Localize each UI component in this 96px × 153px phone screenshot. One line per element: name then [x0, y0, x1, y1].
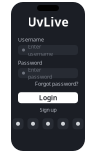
staticText: Sign up: [39, 106, 56, 113]
staticText: Enter password: [28, 66, 52, 80]
button[interactable]: Sign up: [39, 106, 56, 113]
staticText: Forgot password?: [35, 80, 78, 87]
staticText: Username: [18, 36, 44, 43]
staticText: Password: [18, 59, 42, 66]
staticText: UvLive: [27, 14, 68, 30]
button[interactable]: Social login: [72, 118, 83, 129]
button[interactable]: Social login: [12, 118, 23, 129]
button[interactable]: Forgot password?: [35, 80, 78, 87]
button[interactable]: Social login: [27, 118, 38, 129]
staticText: Enter username: [28, 43, 53, 57]
button[interactable]: Social login: [57, 118, 68, 129]
button[interactable]: Login: [18, 92, 78, 103]
button[interactable]: Social login: [42, 118, 53, 129]
staticText: Login: [39, 93, 57, 102]
